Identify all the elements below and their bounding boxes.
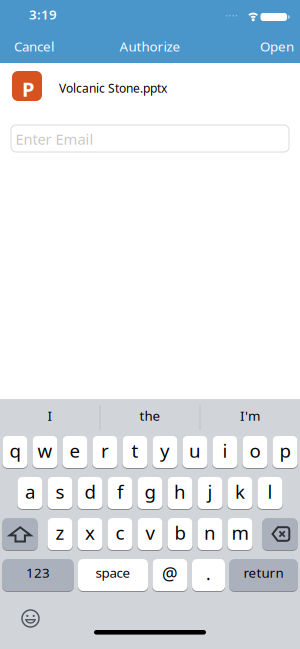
staticText: n [204, 520, 216, 545]
staticText: @ [162, 562, 178, 585]
staticText: Open [260, 37, 294, 55]
staticText: I'm [240, 407, 260, 424]
button[interactable]: Shift [2, 518, 37, 550]
staticText: c [115, 520, 124, 545]
button[interactable]: Open [260, 37, 294, 55]
staticText: space [95, 564, 130, 581]
staticText: Cancel [14, 37, 54, 55]
button[interactable]: g [137, 477, 162, 509]
button[interactable]: Emoji [21, 609, 40, 628]
staticText: Authorize [119, 37, 180, 55]
button[interactable]: the [100, 409, 199, 426]
staticText: . [206, 562, 211, 585]
button[interactable]: h [167, 477, 192, 509]
staticText: 123 [26, 564, 50, 581]
staticText: f [117, 479, 123, 504]
staticText: w [37, 438, 52, 463]
button[interactable]: x [77, 518, 102, 550]
button[interactable]: p [272, 436, 297, 468]
button[interactable]: . [192, 559, 225, 591]
button[interactable]: y [152, 436, 177, 468]
staticText: I [47, 407, 52, 424]
staticText: l [267, 479, 272, 504]
button[interactable]: t [122, 436, 147, 468]
button[interactable]: m [227, 518, 252, 550]
button[interactable]: a [17, 477, 42, 509]
button[interactable]: I [0, 409, 99, 426]
staticText: e [69, 438, 80, 463]
staticText: Enter Email [15, 129, 93, 149]
staticText: return [243, 564, 283, 581]
button[interactable]: u [182, 436, 207, 468]
button[interactable]: f [107, 477, 132, 509]
staticText: r [101, 438, 109, 463]
staticText: u [189, 438, 201, 463]
button[interactable]: Enter Email [11, 125, 289, 152]
button[interactable]: s [47, 477, 72, 509]
button[interactable]: Delete [262, 518, 297, 550]
button[interactable]: @ [152, 559, 187, 591]
staticText: q [9, 438, 20, 463]
button[interactable]: Cancel [14, 37, 54, 55]
staticText: z [55, 520, 64, 545]
button[interactable]: e [62, 436, 87, 468]
staticText: Volcanic Stone.pptx [59, 80, 167, 96]
staticText: t [131, 438, 138, 463]
button[interactable]: b [167, 518, 192, 550]
button[interactable]: r [92, 436, 117, 468]
button[interactable]: space [78, 559, 148, 591]
staticText: i [222, 438, 227, 463]
button[interactable]: i [212, 436, 237, 468]
staticText: y [160, 438, 170, 463]
staticText: 3:19 [29, 5, 57, 23]
button[interactable]: k [227, 477, 252, 509]
staticText: P [22, 76, 34, 102]
button[interactable]: I'm [200, 409, 299, 426]
button[interactable]: v [137, 518, 162, 550]
staticText: g [144, 479, 155, 504]
staticText: s [55, 479, 64, 504]
button[interactable]: j [197, 477, 222, 509]
staticText: a [25, 479, 35, 504]
staticText: p [279, 438, 290, 463]
staticText: d [84, 479, 95, 504]
staticText: j [207, 479, 212, 504]
staticText: x [85, 520, 95, 545]
button[interactable]: c [107, 518, 132, 550]
button[interactable]: l [257, 477, 282, 509]
button[interactable]: o [242, 436, 267, 468]
button[interactable]: n [197, 518, 222, 550]
button[interactable]: q [2, 436, 27, 468]
staticText: o [249, 438, 260, 463]
staticText: h [174, 479, 186, 504]
staticText: k [235, 479, 245, 504]
button[interactable]: return [229, 559, 297, 591]
staticText: the [139, 407, 160, 424]
button[interactable]: d [77, 477, 102, 509]
button[interactable]: w [32, 436, 57, 468]
staticText: v [145, 520, 154, 545]
staticText: m [231, 520, 248, 545]
staticText: b [174, 520, 185, 545]
button[interactable]: z [47, 518, 72, 550]
button[interactable]: 123 [2, 559, 73, 591]
